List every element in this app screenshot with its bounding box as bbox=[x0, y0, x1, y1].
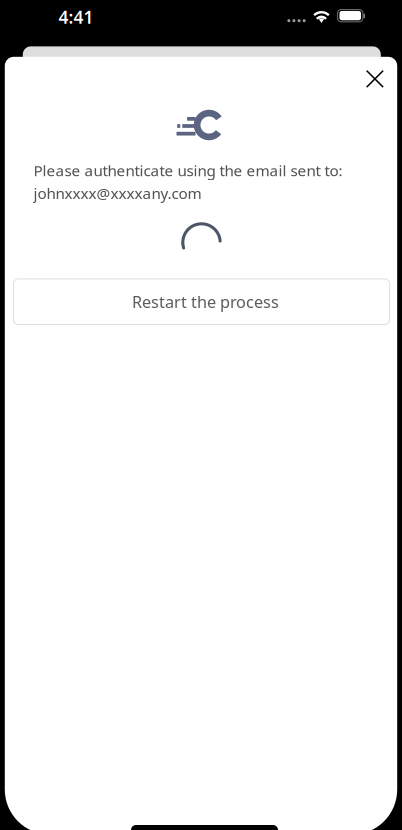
staticText: johnxxxx@xxxxany.com bbox=[34, 183, 202, 203]
button[interactable]: Restart the process bbox=[13, 279, 390, 324]
staticText: Please authenticate using the email sent… bbox=[34, 160, 343, 181]
staticText: Restart the process bbox=[132, 291, 279, 313]
button[interactable]: Close bbox=[354, 58, 396, 100]
staticText: 4:41 bbox=[58, 5, 93, 29]
